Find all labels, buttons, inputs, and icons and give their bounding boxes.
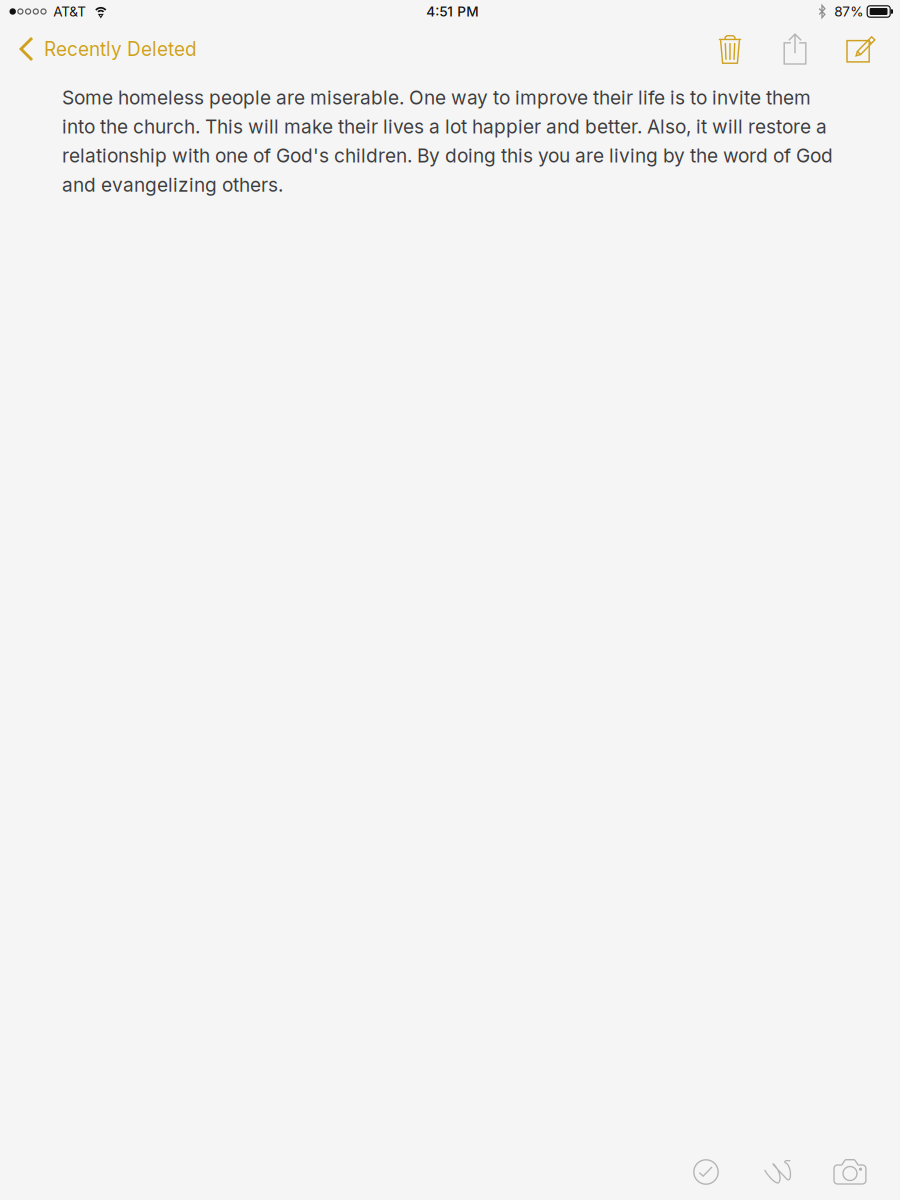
button[interactable]: Delete <box>698 24 762 74</box>
button[interactable]: Recently Deleted <box>0 23 209 75</box>
button[interactable]: Checklist <box>670 1144 742 1200</box>
button[interactable]: Camera <box>814 1144 886 1200</box>
staticText: AT&T <box>53 3 86 20</box>
staticText: 4:51 PM <box>426 3 478 20</box>
button[interactable]: Draw <box>742 1144 814 1200</box>
button[interactable]: Share <box>762 24 828 74</box>
staticText: Some homeless people are miserable. One … <box>62 86 833 196</box>
button[interactable]: Compose <box>828 23 894 74</box>
staticText: 87% <box>834 3 863 20</box>
staticText: Recently Deleted <box>44 37 197 60</box>
